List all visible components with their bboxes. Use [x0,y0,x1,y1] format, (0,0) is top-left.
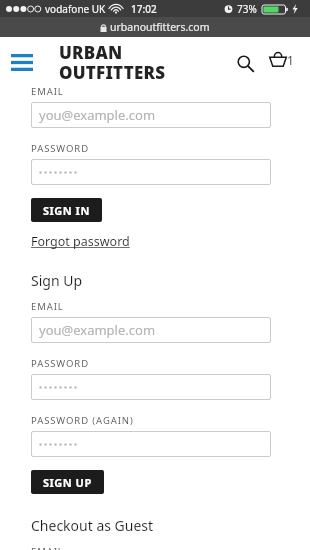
button[interactable]: Forgot password [31,231,130,252]
button[interactable] [31,159,271,185]
staticText: EMAIL [31,85,64,98]
button[interactable] [31,374,271,400]
staticText: you@example.com [39,321,156,339]
staticText: SIGN UP [43,475,92,490]
staticText: you@example.com [39,106,156,124]
button[interactable]: Shopping bag, 1 item [269,50,294,67]
staticText: PASSWORD [31,142,89,155]
staticText: Sign Up [31,271,83,290]
button[interactable]: Menu [10,52,34,72]
button[interactable]: you@example.com [31,102,271,128]
staticText: EMAIL [31,545,64,550]
staticText: vodafone UK [45,2,106,16]
staticText: OUTFITTERS [59,61,166,84]
button[interactable]: urbanoutfitters.com [0,17,310,37]
button[interactable]: SIGN IN [31,198,102,222]
staticText: 1 [287,52,294,68]
staticText: urbanoutfitters.com [110,20,210,34]
button[interactable]: URBAN [59,41,166,87]
staticText: EMAIL [31,300,64,313]
button[interactable]: you@example.com [31,317,271,343]
staticText: URBAN [59,41,123,64]
button[interactable]: SIGN UP [31,470,104,494]
staticText: SIGN IN [43,203,90,218]
staticText: PASSWORD [31,357,89,370]
staticText: 17:02 [131,2,157,16]
staticText: Checkout as Guest [31,516,154,535]
button[interactable] [31,431,271,457]
staticText: PASSWORD (AGAIN) [31,414,134,427]
button[interactable]: Search [232,50,258,76]
staticText: Forgot password [31,233,130,250]
staticText: Sign In [31,56,74,74]
staticText: 73% [237,2,257,16]
